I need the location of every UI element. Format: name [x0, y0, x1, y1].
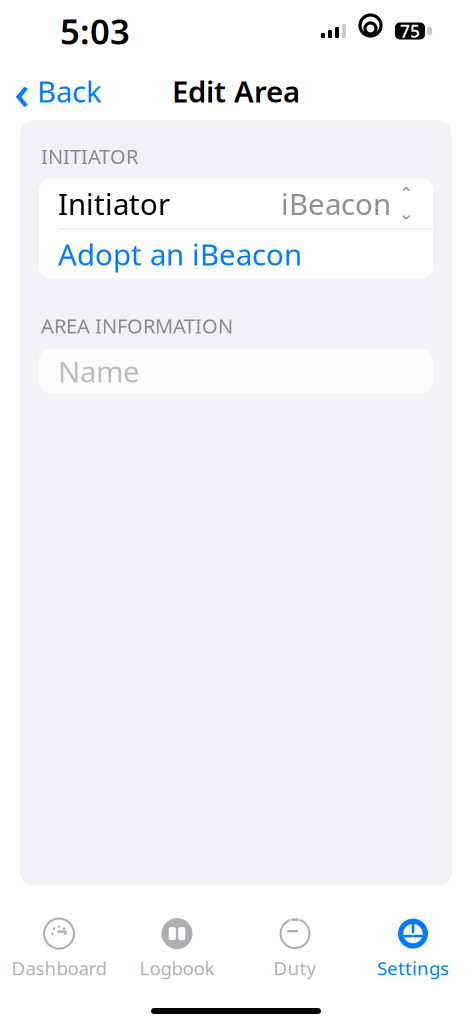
staticText: AREA INFORMATION — [41, 313, 233, 339]
button[interactable]: Initiator — [39, 179, 433, 229]
button[interactable]: Dashboard — [0, 910, 118, 988]
staticText: Adopt an iBeacon — [58, 235, 302, 274]
staticText: iBeacon — [281, 184, 391, 223]
button[interactable]: Adopt an iBeacon — [39, 230, 433, 279]
staticText: ⌃ ⌄ — [399, 184, 414, 223]
staticText: ‹ — [14, 59, 30, 123]
staticText: 75 — [400, 19, 420, 42]
button[interactable]: Settings — [354, 910, 472, 988]
staticText: Settings — [377, 956, 449, 980]
button[interactable]: Duty — [236, 910, 354, 988]
staticText: Logbook — [139, 956, 214, 980]
button[interactable]: ‹ — [0, 53, 116, 129]
staticText: Dashboard — [11, 956, 106, 980]
button[interactable]: Logbook — [118, 910, 236, 988]
staticText: Edit Area — [172, 71, 300, 110]
staticText: Name — [58, 352, 140, 391]
staticText: Initiator — [58, 184, 170, 223]
button[interactable]: Name — [39, 349, 433, 393]
staticText: Back — [37, 71, 102, 110]
staticText: Duty — [273, 956, 316, 980]
staticText: 5:03 — [60, 8, 130, 54]
staticText: INITIATOR — [41, 143, 138, 170]
